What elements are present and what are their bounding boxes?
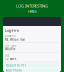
staticText: Fire Type (5, 44, 17, 47)
staticText: Report to 911 (6, 64, 27, 67)
staticText: 12 acres (5, 57, 16, 61)
staticText: FIRES (27, 8, 36, 14)
staticText: LOG INTERESTING (16, 3, 48, 8)
staticText: Size (5, 54, 10, 57)
staticText: Log Fire (5, 27, 19, 33)
staticText: Location (5, 34, 16, 38)
staticText: Mt. Wilson Trail (5, 38, 25, 41)
staticText: Add Photo (6, 69, 22, 72)
staticText: Wildfire (5, 47, 16, 51)
